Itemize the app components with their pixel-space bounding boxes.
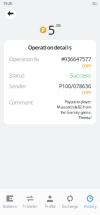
- button[interactable]: COPY: [82, 63, 91, 68]
- staticText: Success: [70, 72, 91, 79]
- staticText: P100/078636: [59, 83, 91, 90]
- staticText: 19:26: [3, 1, 12, 6]
- button[interactable]: Back: [4, 7, 17, 20]
- staticText: Transfer: [22, 204, 37, 209]
- staticText: Comment: [9, 99, 33, 106]
- button[interactable]: COPY: [82, 90, 91, 95]
- button[interactable]: Exchange: [60, 192, 80, 212]
- staticText: Operation №: [9, 56, 39, 63]
- button[interactable]: Transfer: [20, 192, 40, 212]
- staticText: .03: [55, 23, 60, 28]
- staticText: Status: [9, 72, 25, 79]
- staticText: #936647577: [61, 56, 91, 63]
- staticText: Profile: [44, 204, 55, 209]
- staticText: COPY: [82, 90, 91, 95]
- button[interactable]: Profile: [40, 192, 60, 212]
- staticText: Balance: [3, 204, 17, 209]
- staticText: 4G: [92, 1, 97, 6]
- staticText: P: [42, 26, 45, 34]
- button[interactable]: Balance: [0, 192, 20, 212]
- staticText: Sender: [9, 83, 26, 90]
- staticText: Payout to player MaisonUsA82 from the Go…: [56, 99, 91, 120]
- staticText: History: [83, 204, 96, 209]
- button[interactable]: History: [80, 192, 100, 212]
- staticText: Operation details: [28, 44, 72, 51]
- staticText: COPY: [82, 63, 91, 68]
- staticText: 5: [48, 22, 55, 38]
- staticText: Exchange: [62, 204, 78, 209]
